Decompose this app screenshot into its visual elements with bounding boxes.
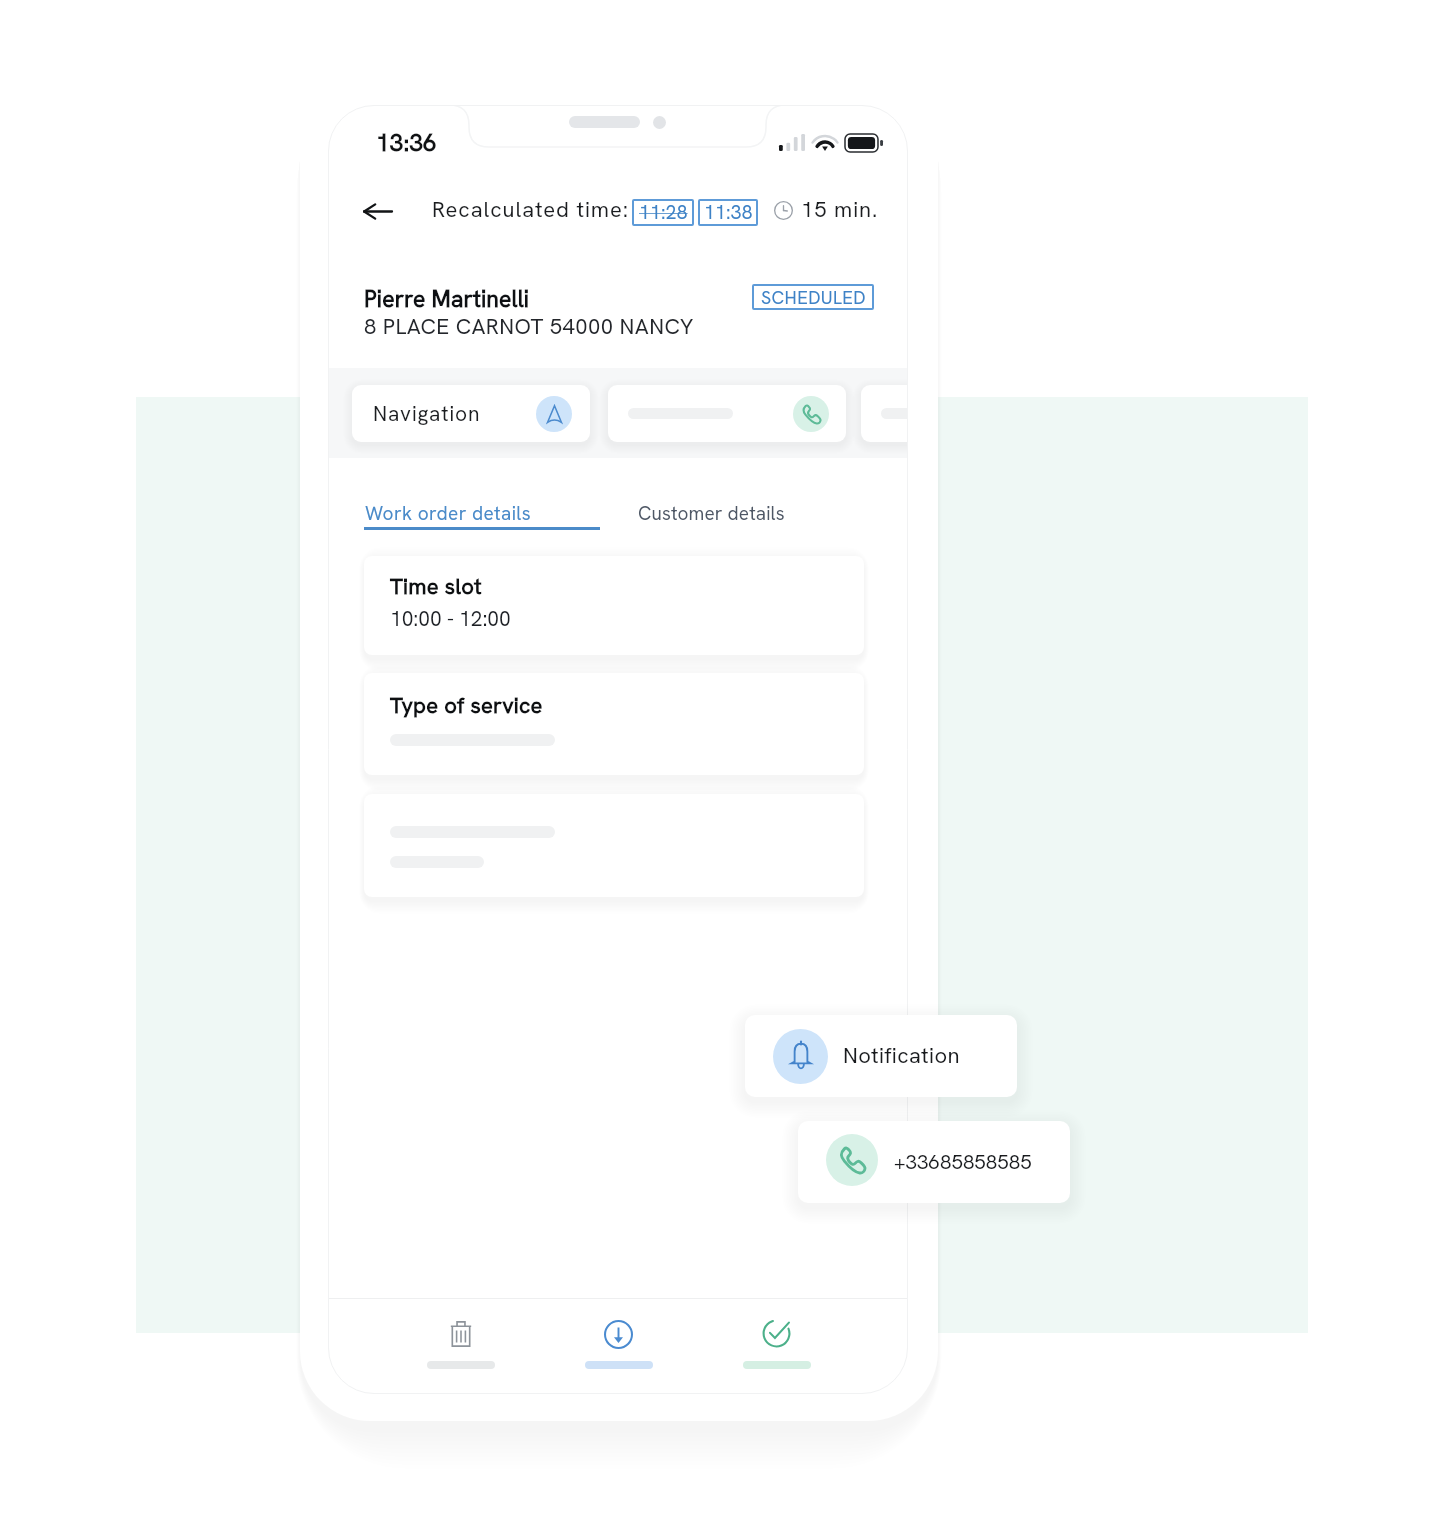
staticText: Notification [843,1041,960,1070]
button[interactable]: Navigation [352,385,590,442]
button[interactable]: Back [349,183,405,239]
button[interactable]: Time slot [364,556,864,655]
staticText: Pierre Martinelli [364,284,530,314]
staticText: Recalculated time: [432,195,629,224]
staticText: 15 min. [801,195,879,224]
staticText: 10:00 - 12:00 [390,605,511,632]
button[interactable] [364,794,864,897]
button[interactable]: Delete [426,1315,495,1375]
staticText: 8 PLACE CARNOT 54000 NANCY [364,312,694,341]
button[interactable]: SCHEDULED [752,284,874,310]
button[interactable]: +33685858585 [798,1121,1070,1203]
button[interactable]: Notification [745,1015,1017,1097]
staticText: Type of service [390,691,543,720]
staticText: SCHEDULED [761,286,866,309]
staticText: 11:28 [639,200,688,225]
button[interactable]: Download [584,1315,653,1375]
staticText: Work order details [365,501,531,526]
staticText: Navigation [373,400,481,427]
button[interactable] [861,385,908,442]
button[interactable]: Type of service [364,673,864,775]
staticText: 11:38 [704,200,753,225]
button[interactable]: Customer details [628,495,792,529]
button[interactable]: Work order details [356,495,612,537]
button[interactable]: Complete [742,1315,811,1375]
staticText: +33685858585 [894,1148,1032,1175]
staticText: Time slot [390,572,482,601]
staticText: Customer details [638,501,785,526]
staticText: 13:36 [376,127,438,158]
button[interactable] [608,385,846,442]
